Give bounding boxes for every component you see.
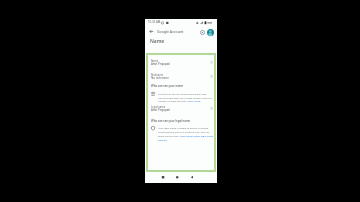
staticText: Who can see your name <box>151 84 184 88</box>
staticText: create in Google services. Learn more <box>158 99 201 102</box>
staticText: Your legal name is visible to others in … <box>158 126 209 129</box>
staticText: 10:33 AM <box>148 20 161 24</box>
staticText: Amit Prajapati <box>151 108 171 112</box>
button[interactable]: Name <box>147 58 215 69</box>
staticText: Name <box>151 59 159 63</box>
button[interactable]: create in Google services. Learn more <box>158 99 201 102</box>
staticText: Google Account <box>157 29 184 34</box>
button[interactable]: Legal name <box>147 104 215 115</box>
staticText: Who can see your legal name <box>151 119 191 123</box>
staticText: Name <box>150 38 165 45</box>
staticText: when you pay bills. Learn more about leg… <box>158 134 214 137</box>
staticText: Nickname <box>151 73 164 77</box>
button[interactable]: Nickname <box>147 72 215 83</box>
staticText: communicate with you or view content tha… <box>158 96 212 99</box>
staticText: Legal name <box>151 105 166 109</box>
button[interactable]: when you pay bills. Learn more about leg… <box>158 134 214 137</box>
button[interactable] <box>186 172 198 182</box>
button[interactable] <box>207 29 214 36</box>
button[interactable] <box>200 30 205 35</box>
staticText: visibility <box>158 138 167 141</box>
staticText: Amit Prajapati <box>151 62 171 66</box>
button[interactable] <box>157 172 169 182</box>
staticText: circumstances and isn't linked to you, s… <box>158 130 209 133</box>
button[interactable] <box>171 172 183 182</box>
staticText: Anyone can see this information when the… <box>158 92 207 95</box>
staticText: No nickname <box>151 76 169 80</box>
button[interactable] <box>149 29 154 34</box>
